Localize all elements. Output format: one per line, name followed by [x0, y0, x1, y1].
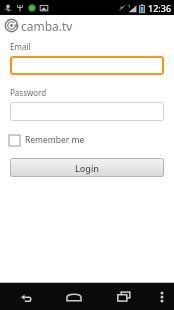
- staticText: camba.tv: [21, 18, 73, 34]
- staticText: Remember me: [25, 134, 85, 146]
- button[interactable]: Login: [10, 158, 164, 177]
- button[interactable]: camba.tv: [0, 15, 174, 36]
- button[interactable]: Recent apps: [99, 283, 149, 310]
- staticText: 12:36: [148, 2, 172, 14]
- staticText: Login: [75, 162, 99, 174]
- button[interactable]: [10, 56, 164, 75]
- button[interactable]: More options: [149, 283, 174, 310]
- staticText: Email: [10, 41, 31, 52]
- button[interactable]: Remember me: [9, 132, 85, 148]
- button[interactable]: Home: [49, 283, 99, 310]
- button[interactable]: Back: [0, 283, 49, 310]
- button[interactable]: [10, 102, 164, 121]
- staticText: Password: [10, 87, 47, 98]
